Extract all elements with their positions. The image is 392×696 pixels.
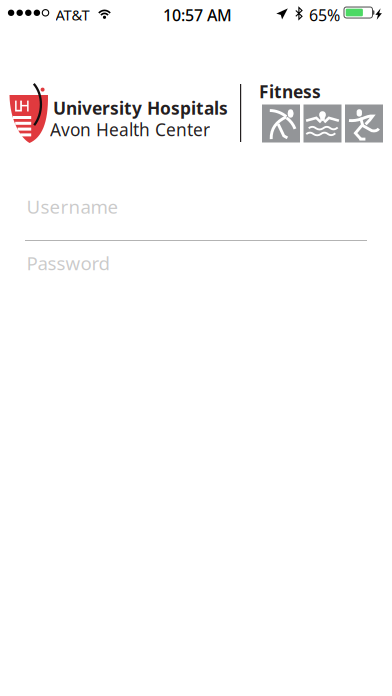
staticText: Fitness — [259, 80, 321, 103]
staticText: 65% — [309, 4, 340, 26]
staticText: Avon Health Center — [50, 118, 210, 141]
staticText: Username — [26, 194, 118, 219]
staticText: Password — [26, 250, 109, 275]
staticText: AT&T — [55, 5, 89, 24]
staticText: University Hospitals — [53, 96, 228, 119]
button[interactable]: Username — [25, 194, 367, 241]
staticText: 10:57 AM — [163, 4, 232, 26]
button[interactable]: Password — [25, 250, 367, 297]
